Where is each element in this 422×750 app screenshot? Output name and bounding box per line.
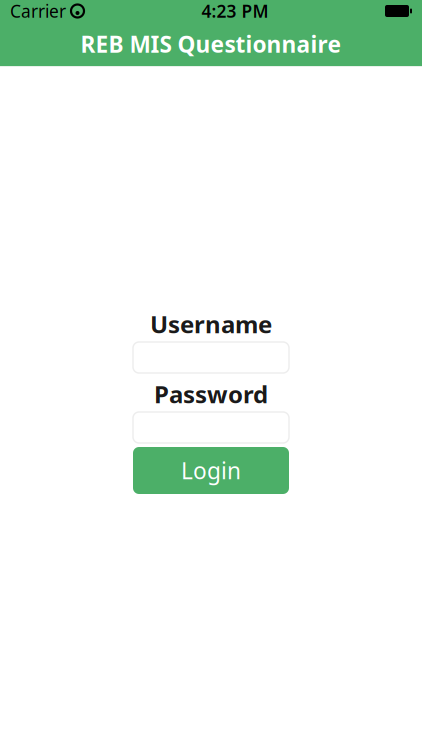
staticText: REB MIS Questionnaire (80, 29, 341, 59)
staticText: Login (181, 455, 241, 485)
staticText: Username (150, 308, 272, 340)
staticText: Carrier (10, 0, 66, 22)
button[interactable]: Username (133, 342, 289, 373)
staticText: Password (154, 378, 268, 410)
button[interactable]: Login (133, 447, 289, 494)
staticText: 4:23 PM (201, 0, 268, 22)
button[interactable]: Password (133, 412, 289, 443)
